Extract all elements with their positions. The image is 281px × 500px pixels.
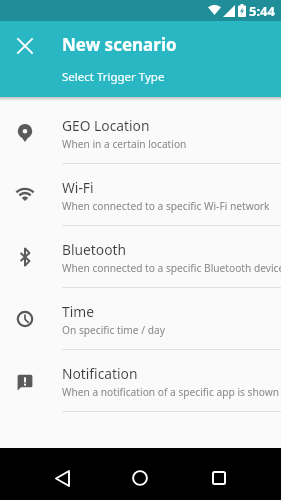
staticText: Wi-Fi — [62, 178, 94, 197]
staticText: On specific time / day — [62, 323, 165, 337]
staticText: GEO Location — [62, 116, 150, 135]
staticText: Time — [62, 302, 94, 321]
button[interactable] — [199, 458, 239, 498]
button[interactable] — [42, 458, 82, 498]
staticText: When in a certain location — [62, 137, 187, 151]
staticText: Bluetooth — [62, 240, 127, 259]
button[interactable]: Time — [0, 288, 281, 350]
staticText: Select Trigger Type — [62, 69, 165, 85]
staticText: When connected to a specific Wi-Fi netwo… — [62, 199, 270, 213]
button[interactable]: Bluetooth — [0, 226, 281, 288]
button[interactable] — [120, 458, 160, 498]
staticText: When connected to a specific Bluetooth d… — [62, 261, 281, 275]
staticText: 5:44 — [249, 2, 275, 20]
staticText: When a notification of a specific app is… — [62, 385, 279, 399]
button[interactable]: Notification — [0, 350, 281, 412]
staticText: New scenario — [62, 33, 177, 56]
staticText: Notification — [62, 364, 138, 383]
button[interactable] — [5, 26, 45, 66]
button[interactable]: Wi-Fi — [0, 164, 281, 226]
button[interactable]: GEO Location — [0, 102, 281, 164]
